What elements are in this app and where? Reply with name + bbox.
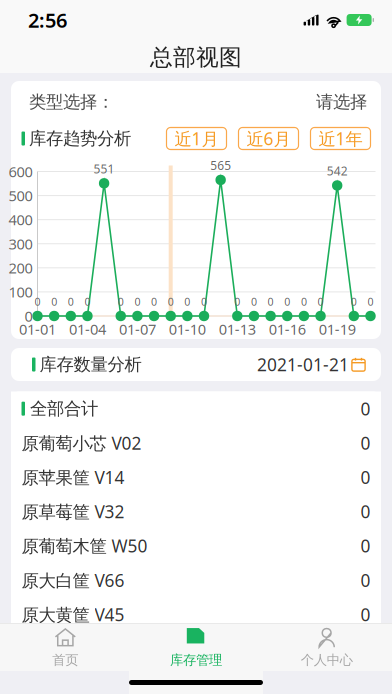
staticText: 200 [8, 258, 32, 278]
staticText: 2:56 [28, 7, 67, 33]
staticText: 565 [210, 157, 231, 173]
staticText: 01-16 [269, 319, 306, 339]
staticText: 0 [34, 294, 40, 309]
staticText: 0 [184, 294, 190, 309]
button[interactable]: 全部合计 [11, 391, 381, 426]
staticText: 0 [151, 294, 157, 309]
staticText: 0 [360, 500, 370, 523]
button[interactable]: 库存管理 [131, 620, 261, 674]
staticText: 0 [24, 306, 32, 326]
staticText: 首页 [52, 652, 78, 668]
staticText: 类型选择： [29, 91, 114, 113]
staticText: 0 [360, 534, 370, 557]
staticText: 请选择 [316, 91, 367, 113]
staticText: 500 [8, 186, 32, 205]
button[interactable]: 近6月 [238, 127, 298, 149]
staticText: 0 [118, 294, 124, 309]
staticText: 原苹果筐 V14 [21, 466, 124, 489]
staticText: 库存管理 [170, 652, 222, 668]
button[interactable]: 原大黄筐 V45 [11, 597, 381, 632]
staticText: 600 [8, 162, 32, 181]
staticText: 0 [284, 294, 290, 309]
staticText: 个人中心 [301, 652, 353, 668]
staticText: 0 [268, 294, 274, 309]
button[interactable]: 原葡萄小芯 V02 [11, 426, 381, 460]
staticText: 01-10 [169, 319, 206, 339]
staticText: 0 [301, 294, 307, 309]
staticText: 原葡萄木筐 W50 [21, 534, 147, 557]
staticText: 原大白筐 V66 [21, 569, 124, 592]
button[interactable]: 首页 [0, 620, 131, 674]
staticText: 0 [251, 294, 257, 309]
staticText: 0 [51, 294, 57, 309]
staticText: 400 [8, 210, 32, 229]
staticText: 01-07 [119, 319, 156, 339]
staticText: 551 [94, 161, 115, 177]
button[interactable]: 近1月 [166, 127, 226, 149]
button[interactable]: 原葡萄木筐 W50 [11, 529, 381, 563]
staticText: 0 [84, 294, 90, 309]
staticText: 0 [360, 431, 370, 454]
staticText: 100 [8, 282, 32, 302]
staticText: 0 [134, 294, 140, 309]
staticText: 0 [360, 466, 370, 489]
staticText: 300 [8, 234, 32, 253]
staticText: 原草莓筐 V32 [21, 500, 124, 523]
staticText: 01-01 [19, 319, 56, 339]
staticText: 总部视图 [150, 44, 242, 71]
staticText: 原葡萄小芯 V02 [21, 431, 141, 454]
staticText: 库存数量分析 [39, 354, 141, 375]
button[interactable]: 原大白筐 V66 [11, 563, 381, 597]
staticText: 近1月 [174, 127, 218, 150]
staticText: 库存趋势分析 [29, 128, 131, 149]
staticText: 01-13 [219, 319, 256, 339]
staticText: 542 [327, 163, 348, 179]
staticText: 01-19 [319, 319, 356, 339]
staticText: 0 [360, 603, 370, 626]
staticText: 0 [201, 294, 207, 309]
staticText: 2021-01-21 [257, 353, 349, 376]
staticText: 0 [68, 294, 74, 309]
staticText: 0 [351, 294, 357, 309]
staticText: 01-04 [69, 319, 106, 339]
staticText: 0 [360, 569, 370, 592]
button[interactable]: 2021-01-21 [257, 353, 366, 376]
staticText: 全部合计 [30, 398, 98, 419]
staticText: 0 [360, 397, 370, 420]
staticText: 0 [317, 294, 323, 309]
staticText: 0 [234, 294, 240, 309]
button[interactable]: 近1年 [310, 127, 370, 149]
button[interactable]: 个人中心 [261, 620, 392, 674]
staticText: 近6月 [246, 127, 290, 150]
button[interactable]: 类型选择： [11, 81, 381, 123]
button[interactable]: 原苹果筐 V14 [11, 460, 381, 494]
staticText: 原大黄筐 V45 [21, 603, 124, 626]
staticText: 0 [367, 294, 373, 309]
staticText: 0 [168, 294, 174, 309]
button[interactable]: 原草莓筐 V32 [11, 494, 381, 529]
staticText: 近1年 [318, 127, 362, 150]
